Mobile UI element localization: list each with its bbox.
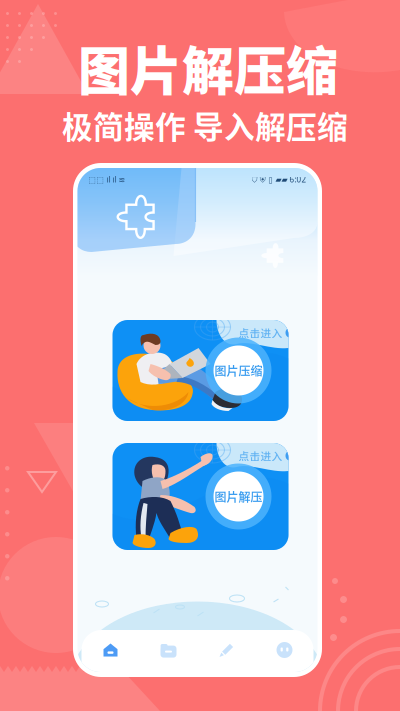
staticText: 图片解压	[214, 488, 262, 505]
staticText: 极简操作 导入解压缩	[62, 103, 348, 147]
button[interactable]: Edit	[197, 642, 255, 658]
button[interactable]: Files	[139, 642, 197, 658]
staticText: ⬚⬚ ıl ıl ≋	[88, 174, 125, 185]
button[interactable]: 点击进入	[112, 308, 288, 421]
button[interactable]: 点击进入	[112, 431, 288, 550]
button[interactable]: Home	[81, 642, 139, 658]
staticText: 图片解压缩	[78, 30, 338, 105]
staticText: ⛉ ⛨ ▯ ▰▰ 6:02	[251, 174, 306, 185]
staticText: 点击进入	[238, 448, 282, 463]
staticText: 图片压缩	[214, 362, 262, 379]
staticText: 点击进入	[238, 325, 282, 340]
button[interactable]: Profile	[255, 642, 313, 658]
